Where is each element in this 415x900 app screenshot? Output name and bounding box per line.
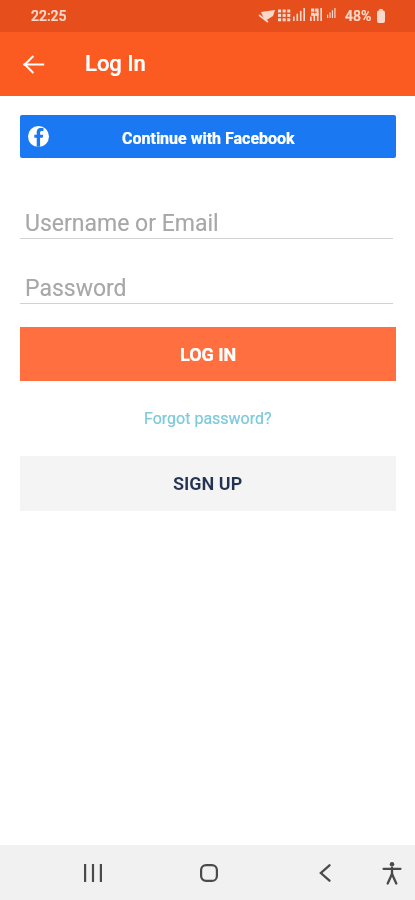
staticText: 48% xyxy=(345,8,372,24)
button[interactable]: Forgot password? xyxy=(20,381,396,456)
staticText: LOG IN xyxy=(180,344,237,365)
staticText: Forgot password? xyxy=(144,409,272,428)
staticText: SIGN UP xyxy=(173,473,243,494)
button[interactable]: Accessibility xyxy=(361,845,415,900)
button[interactable]: Back xyxy=(10,41,57,88)
button[interactable]: SIGN UP xyxy=(20,456,396,511)
staticText: Continue with Facebook xyxy=(122,129,295,148)
button[interactable]: LOG IN xyxy=(20,327,396,381)
staticText: Log In xyxy=(85,51,146,77)
button[interactable]: Back xyxy=(294,845,356,900)
staticText: Username or Email xyxy=(25,210,219,237)
button[interactable]: Home xyxy=(178,845,240,900)
button[interactable]: Continue with Facebook xyxy=(20,115,396,158)
button[interactable]: Recent apps xyxy=(62,845,124,900)
staticText: Password xyxy=(25,275,127,302)
staticText: 22:25 xyxy=(31,8,67,24)
